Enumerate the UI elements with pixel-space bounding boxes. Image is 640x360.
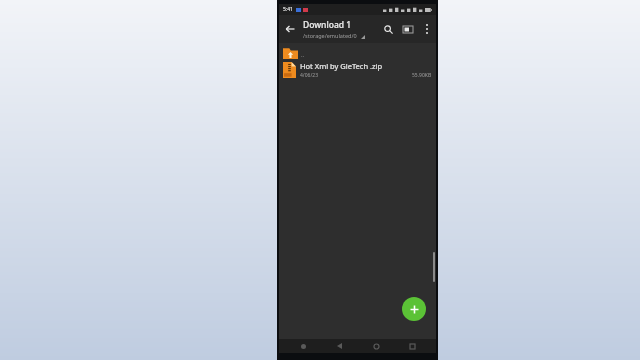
staticText: 4/06/23 (300, 72, 319, 79)
button[interactable]: Home (364, 339, 388, 353)
staticText: 55.90KB (412, 72, 432, 79)
button[interactable]: Search (378, 19, 398, 39)
staticText: 5:41 (283, 6, 293, 13)
button[interactable]: Assistant (291, 339, 315, 353)
staticText: /storage/emulated/0 (303, 32, 357, 39)
staticText: Hot Xml by GleTech .zip (300, 61, 383, 71)
staticText: Download 1 (303, 19, 352, 31)
button[interactable]: Hot Xml by GleTech .zip (279, 59, 436, 81)
button[interactable]: Recent apps (400, 339, 424, 353)
button[interactable]: Back (279, 18, 301, 40)
button[interactable]: Add (402, 297, 426, 321)
button[interactable]: View mode (398, 19, 418, 39)
button[interactable]: .. (279, 43, 436, 59)
button[interactable]: Back (327, 339, 351, 353)
button[interactable]: More options (418, 20, 436, 38)
staticText: .. (301, 51, 305, 59)
